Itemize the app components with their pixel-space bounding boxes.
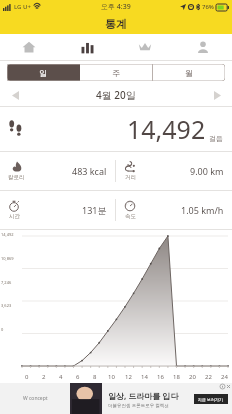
staticText: 0 (1, 327, 4, 332)
staticText: 131분 (82, 204, 107, 216)
staticText: 걸음 (209, 134, 223, 143)
button[interactable]: Statistics (58, 34, 116, 60)
button[interactable]: Advertisement (0, 383, 232, 414)
staticText: 속도 (125, 213, 136, 220)
staticText: 483 kcal (72, 165, 107, 177)
staticText: 14 (141, 373, 148, 381)
staticText: 8 (93, 373, 97, 381)
staticText: 통계 (105, 17, 127, 31)
button[interactable]: 거리 (116, 152, 232, 190)
button[interactable]: 일 (7, 64, 79, 81)
staticText: 시간 (9, 213, 20, 220)
button[interactable]: 주 (80, 64, 152, 81)
button[interactable]: 속도 (116, 191, 232, 229)
staticText: 지금 보러가기 (198, 397, 224, 402)
staticText: 6 (76, 373, 80, 381)
staticText: 일 (39, 68, 47, 78)
staticText: 4 (59, 373, 63, 381)
button[interactable]: 칼로리 (0, 152, 115, 190)
staticText: 칼로리 (8, 174, 25, 181)
button[interactable]: Profile (174, 34, 232, 60)
staticText: 7,246 (1, 280, 12, 285)
staticText: 일상, 드라마를 입다 (108, 390, 179, 401)
staticText: 주 (112, 68, 120, 78)
staticText: 18 (173, 373, 180, 381)
staticText: 14,492 (1, 232, 14, 237)
staticText: 76% (202, 3, 214, 11)
staticText: 1.05 km/h (181, 204, 224, 216)
staticText: 9.00 km (190, 165, 224, 177)
staticText: 10,869 (1, 256, 14, 261)
staticText: 16 (157, 373, 164, 381)
staticText: W concept (23, 395, 48, 402)
button[interactable]: 월 (153, 64, 225, 81)
button[interactable]: Ranking (116, 34, 174, 60)
button[interactable]: 시간 (0, 191, 115, 229)
staticText: 24 (221, 373, 228, 381)
button[interactable]: 14,492 (0, 107, 232, 151)
staticText: 12 (125, 373, 132, 381)
staticText: 월 (185, 68, 193, 78)
staticText: 20 (189, 373, 196, 381)
staticText: 14,492 (127, 112, 206, 146)
staticText: 거리 (125, 174, 136, 181)
staticText: 더블유컨셉 프론트로우 컬렉션 (108, 402, 169, 408)
staticText: LG U+ (14, 3, 31, 11)
button[interactable]: Home (0, 34, 58, 60)
staticText: 10 (108, 373, 115, 381)
staticText: 22 (205, 373, 212, 381)
button[interactable]: Previous day (0, 84, 30, 106)
staticText: 2 (42, 373, 46, 381)
button[interactable]: Next day (202, 84, 232, 106)
staticText: 4월 20일 (96, 88, 136, 102)
staticText: 오후 4:39 (101, 2, 131, 12)
staticText: 0 (25, 373, 29, 381)
staticText: 3,623 (1, 303, 12, 308)
